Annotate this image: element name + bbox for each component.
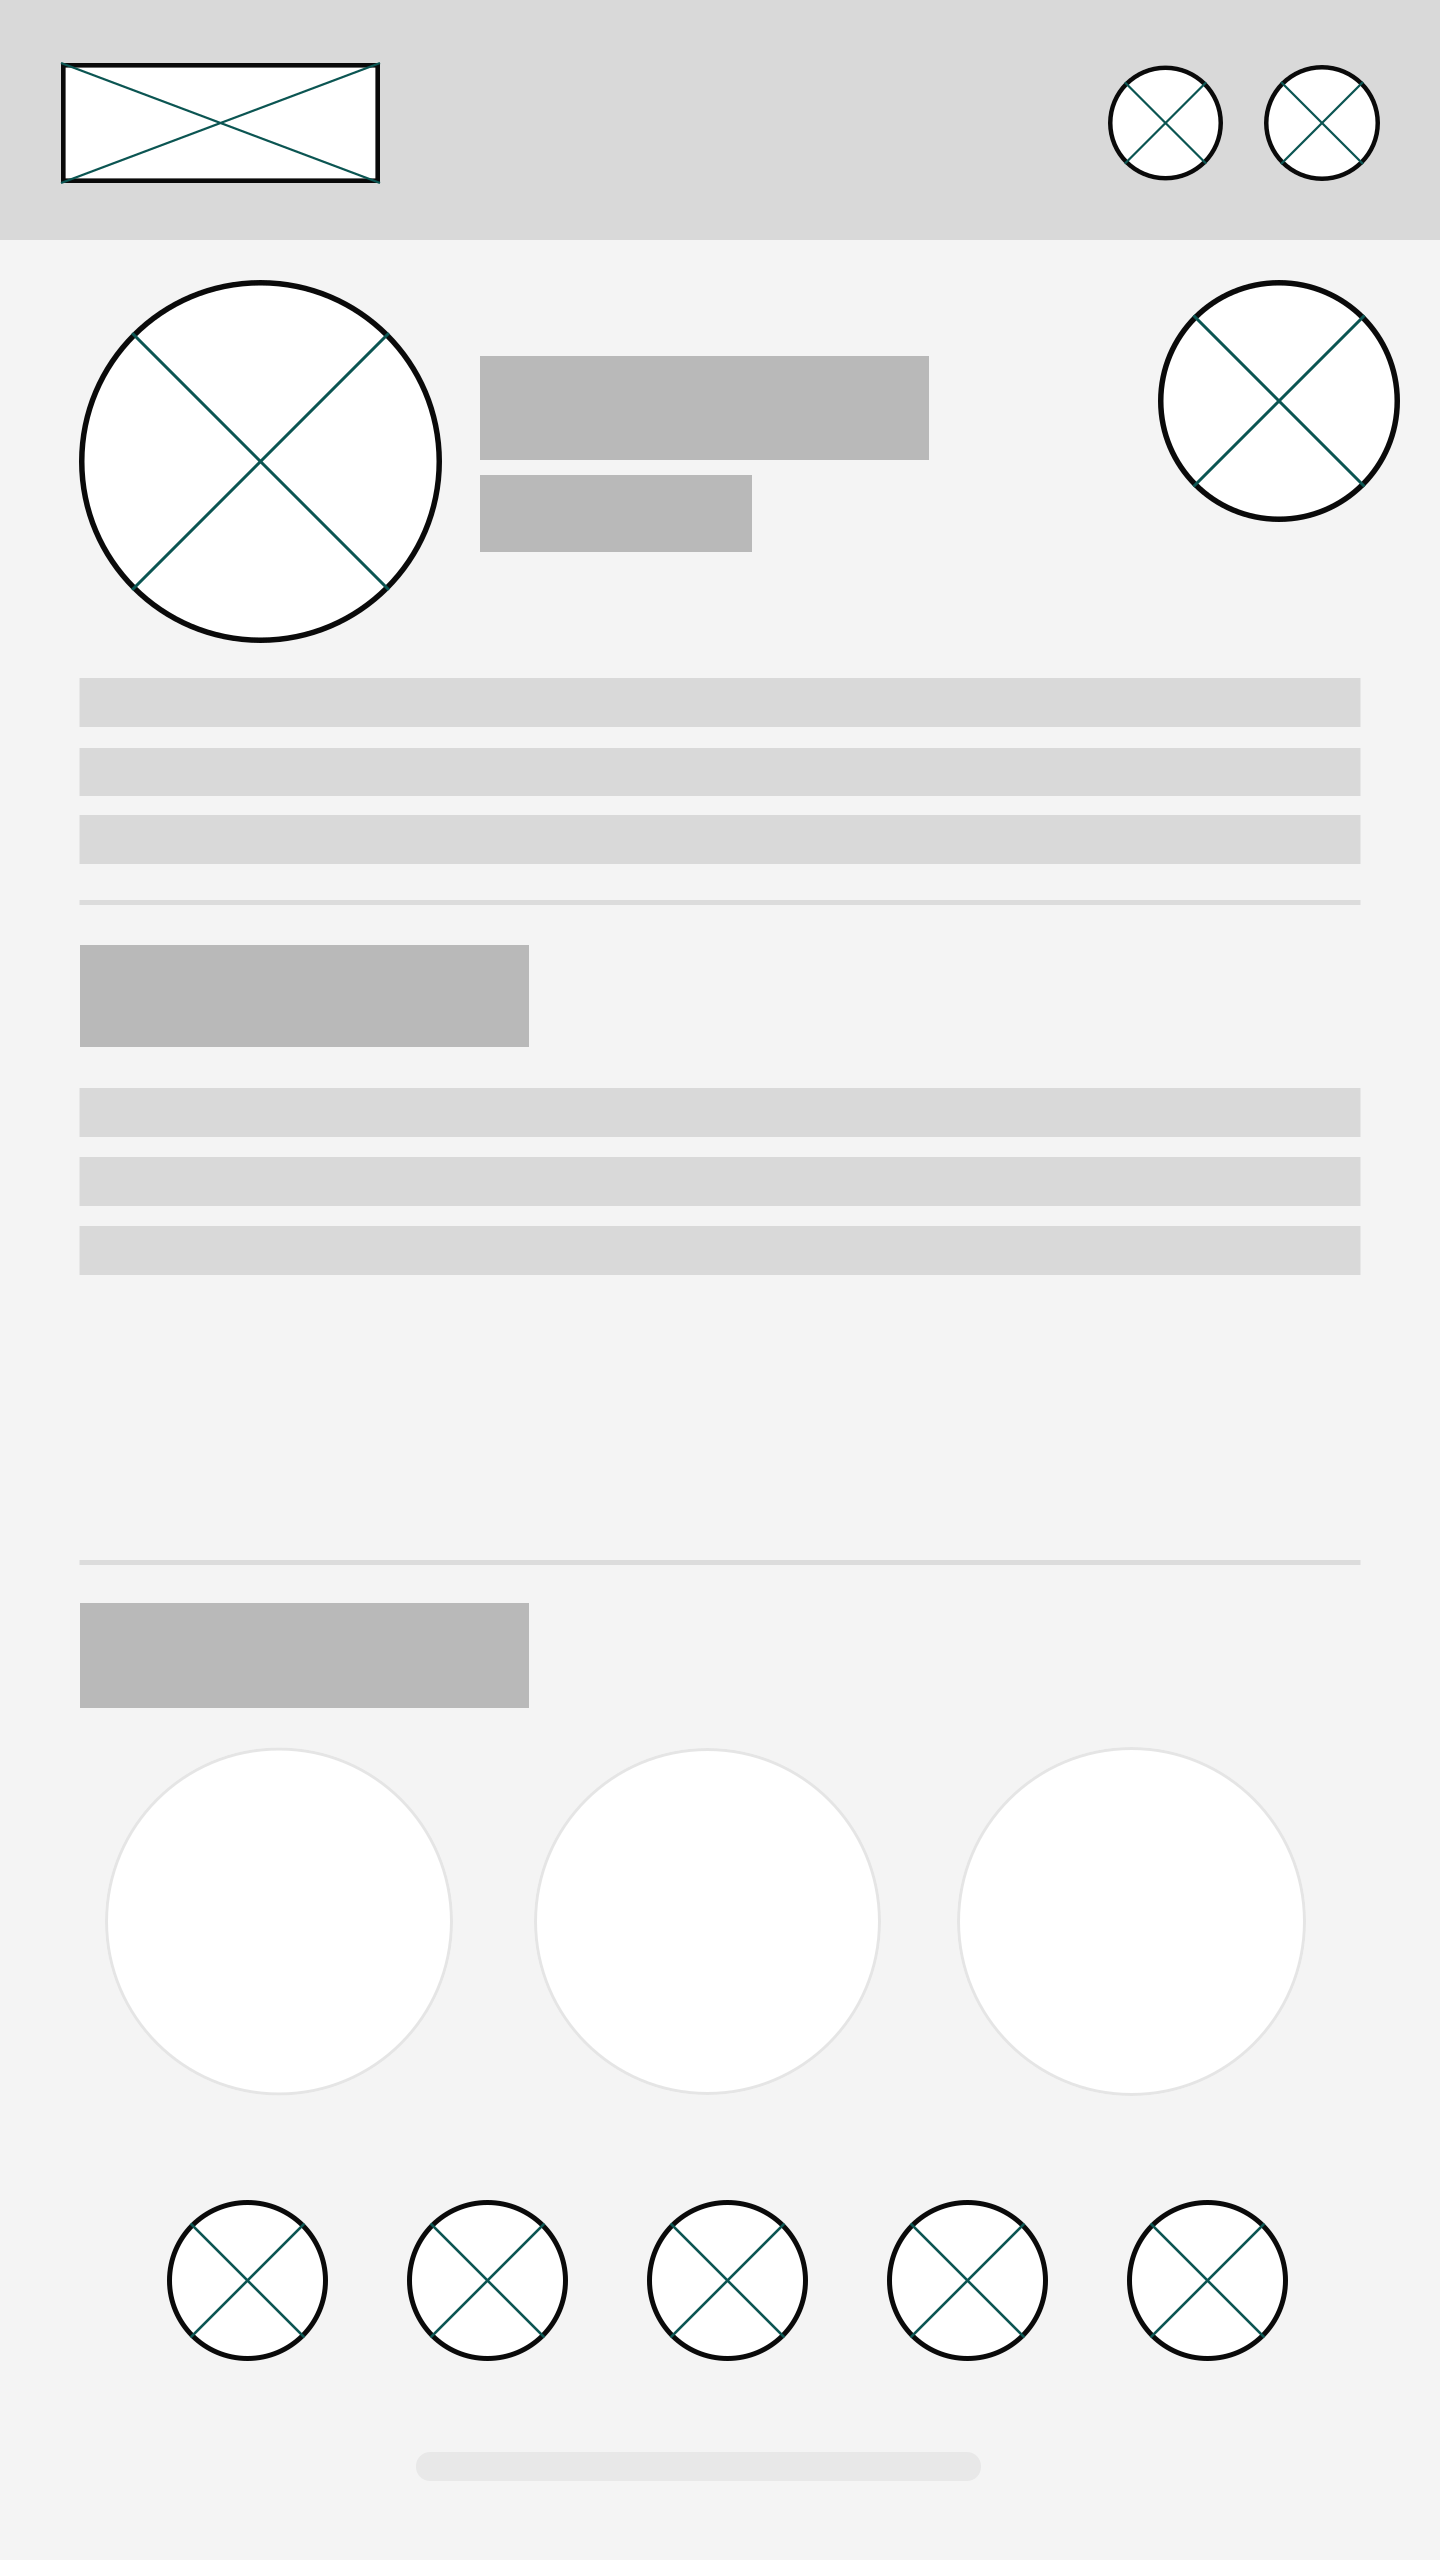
button[interactable]: Home [167,2200,328,2361]
button[interactable]: Story three [957,1747,1306,2096]
button[interactable]: Notifications [1264,65,1380,181]
button[interactable]: Profile [1127,2200,1288,2361]
button[interactable]: Edit profile [1158,280,1400,522]
button[interactable]: Story two [534,1748,881,2095]
button[interactable]: Story one [105,1747,453,2095]
button[interactable]: Activity [887,2200,1048,2361]
button[interactable]: Logo [61,63,380,183]
button[interactable]: Explore [407,2200,568,2361]
button[interactable]: Create [647,2200,808,2361]
button[interactable]: Search [1108,65,1223,180]
